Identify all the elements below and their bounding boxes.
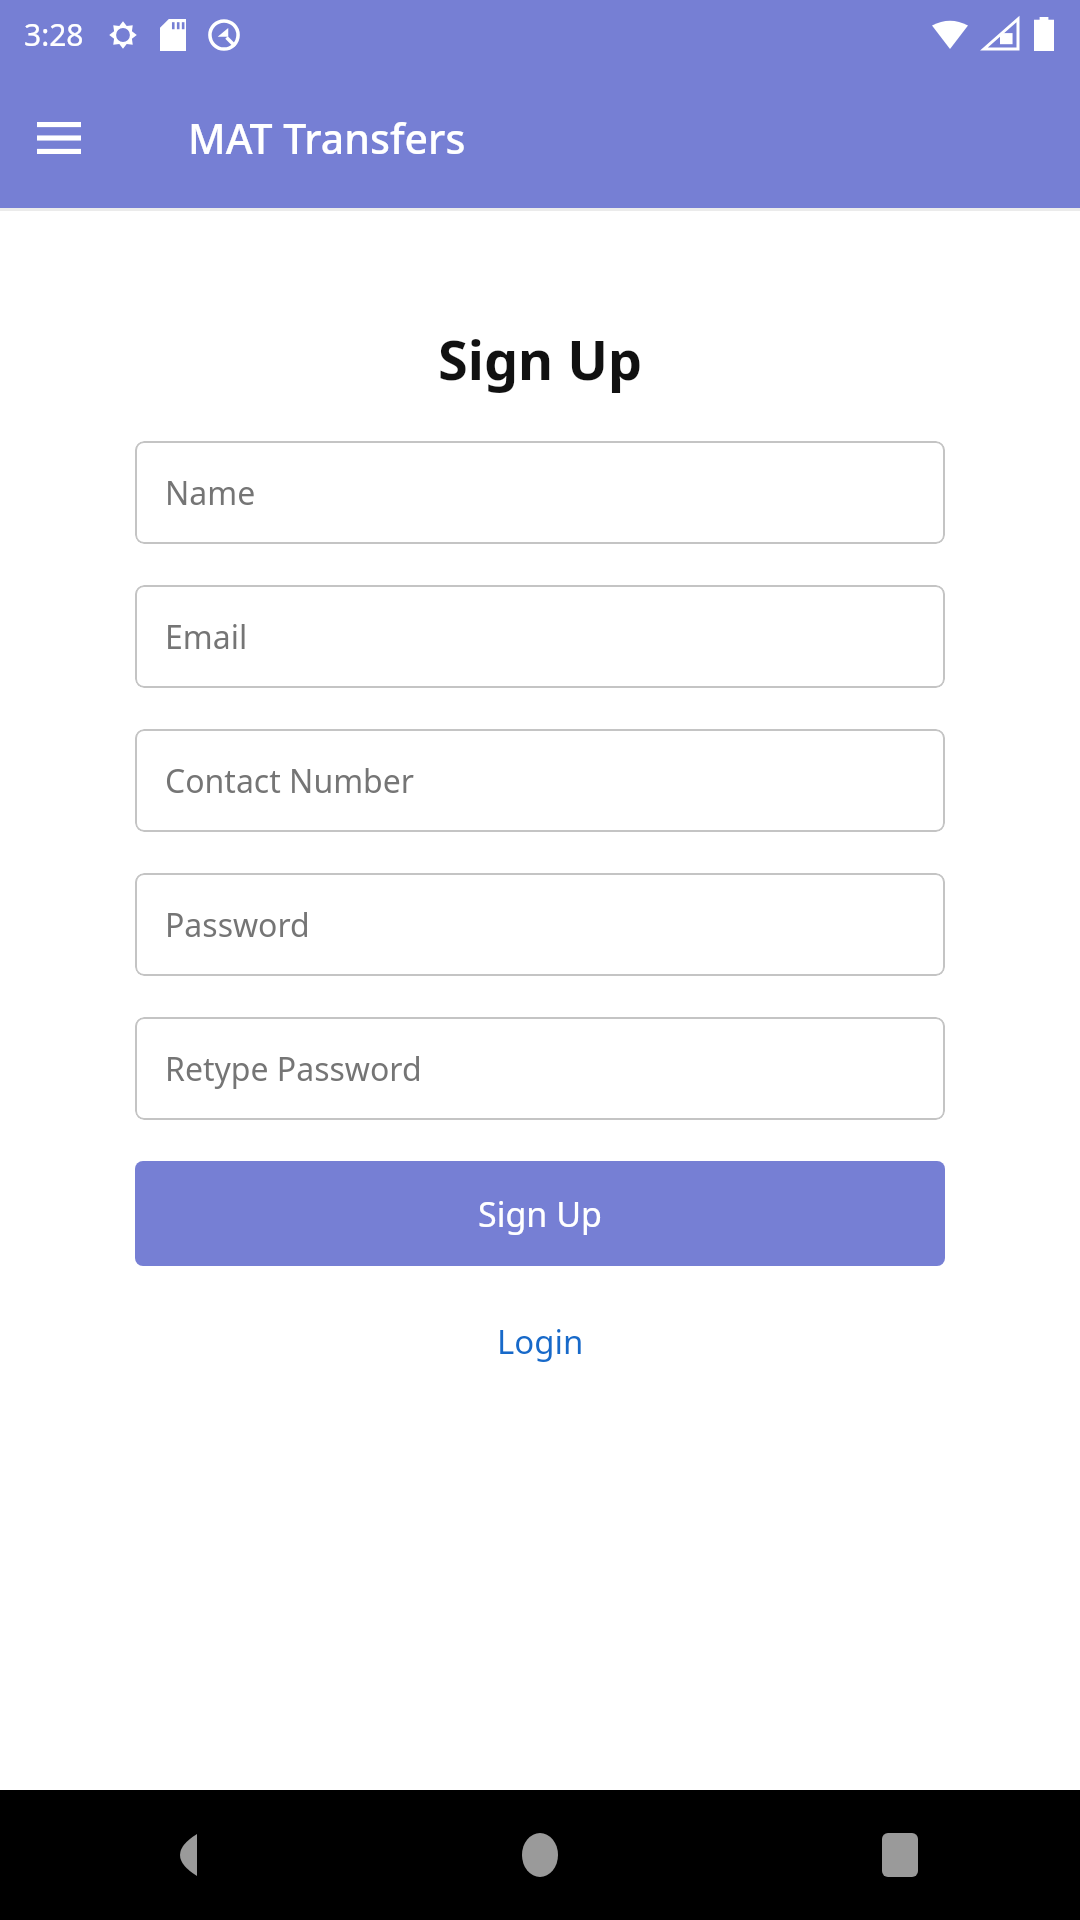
staticText: Sign Up	[438, 322, 643, 396]
button[interactable]: Sign Up	[135, 1161, 945, 1266]
staticText: Sign Up	[478, 1191, 602, 1237]
staticText: MAT Transfers	[188, 110, 466, 166]
button[interactable]: Back	[132, 1807, 228, 1903]
staticText: Email	[165, 615, 248, 659]
button[interactable]: Email	[135, 585, 945, 688]
button[interactable]: Home	[492, 1807, 588, 1903]
button[interactable]: Contact Number	[135, 729, 945, 832]
staticText: 3:28	[24, 14, 84, 55]
staticText: Contact Number	[165, 759, 415, 803]
button[interactable]: Open navigation menu	[26, 105, 92, 171]
button[interactable]: Name	[135, 441, 945, 544]
staticText: Retype Password	[165, 1047, 422, 1091]
button[interactable]: Retype Password	[135, 1017, 945, 1120]
staticText: Name	[165, 471, 256, 515]
staticText: Login	[497, 1319, 584, 1364]
button[interactable]: Recent apps	[852, 1807, 948, 1903]
staticText: Password	[165, 903, 310, 947]
button[interactable]: Password	[135, 873, 945, 976]
button[interactable]: Login	[479, 1311, 602, 1372]
